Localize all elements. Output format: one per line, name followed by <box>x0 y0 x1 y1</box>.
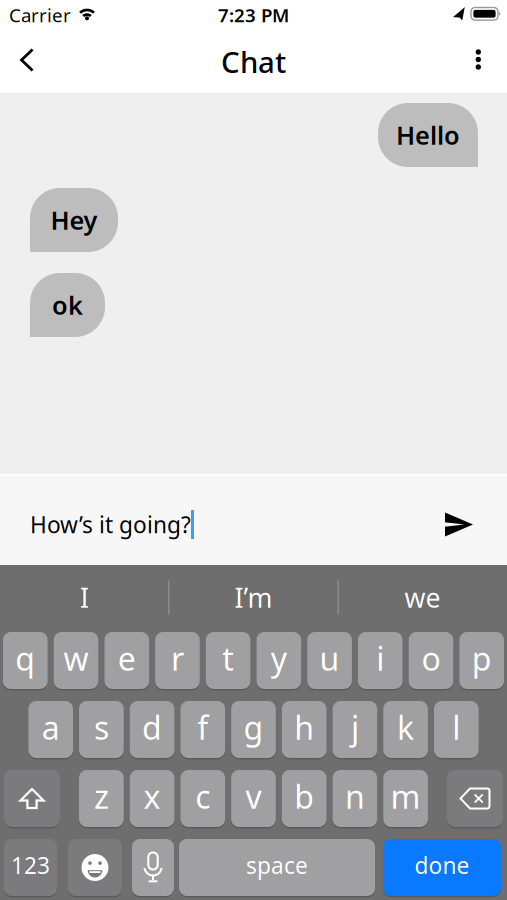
staticText: 123 <box>11 850 50 880</box>
button[interactable]: d <box>130 701 174 758</box>
button[interactable]: c <box>180 770 225 827</box>
staticText: r <box>171 637 184 680</box>
staticText: i <box>376 637 384 680</box>
button[interactable]: z <box>79 770 124 827</box>
button[interactable]: o <box>409 632 453 689</box>
button[interactable]: e <box>104 632 149 689</box>
button[interactable]: More options <box>476 33 507 90</box>
staticText: ok <box>52 288 83 322</box>
staticText: h <box>294 706 314 749</box>
staticText: n <box>345 775 365 818</box>
staticText: How’s it going? <box>30 509 191 539</box>
staticText: m <box>391 775 421 818</box>
button[interactable]: m <box>383 770 428 827</box>
button[interactable]: b <box>282 770 327 827</box>
button[interactable]: done <box>383 839 501 896</box>
staticText: Chat <box>221 42 286 81</box>
staticText: I <box>80 580 89 615</box>
staticText: g <box>243 706 263 749</box>
button[interactable]: t <box>206 632 250 689</box>
button[interactable]: r <box>155 632 200 689</box>
staticText: c <box>195 775 210 818</box>
button[interactable]: j <box>333 701 377 758</box>
button[interactable]: h <box>282 701 327 758</box>
button[interactable]: p <box>459 632 504 689</box>
button[interactable]: 123 <box>4 839 57 896</box>
button[interactable]: x <box>130 770 174 827</box>
button[interactable]: w <box>54 632 98 689</box>
button[interactable]: u <box>307 632 352 689</box>
staticText: y <box>271 637 287 680</box>
staticText: t <box>222 637 234 680</box>
button[interactable]: n <box>333 770 377 827</box>
staticText: u <box>320 637 340 680</box>
staticText: p <box>472 637 492 680</box>
button[interactable]: f <box>180 701 225 758</box>
staticText: f <box>197 706 208 749</box>
staticText: x <box>144 775 161 818</box>
button[interactable]: space <box>179 839 375 896</box>
button[interactable]: Shift <box>4 770 60 827</box>
staticText: 7:23 PM <box>218 3 289 27</box>
staticText: a <box>42 706 60 749</box>
staticText: we <box>404 580 440 615</box>
button[interactable]: y <box>256 632 301 689</box>
button[interactable]: Back <box>0 31 34 91</box>
button[interactable]: Send <box>433 492 507 556</box>
staticText: s <box>94 706 109 749</box>
staticText: o <box>421 637 440 680</box>
staticText: d <box>142 706 162 749</box>
button[interactable]: s <box>79 701 124 758</box>
staticText: Carrier <box>9 3 71 27</box>
staticText: q <box>15 637 35 680</box>
button[interactable]: Delete <box>447 770 503 827</box>
staticText: l <box>452 706 460 749</box>
button[interactable]: k <box>383 701 428 758</box>
staticText: w <box>64 637 89 680</box>
button[interactable]: Dictate <box>132 839 174 896</box>
button[interactable]: g <box>231 701 276 758</box>
button[interactable]: l <box>434 701 479 758</box>
button[interactable]: i <box>358 632 403 689</box>
staticText: v <box>245 775 261 818</box>
staticText: Hello <box>396 118 460 152</box>
button[interactable]: q <box>3 632 48 689</box>
button[interactable]: I’m <box>169 565 338 630</box>
staticText: j <box>351 706 359 749</box>
button[interactable]: a <box>28 701 73 758</box>
staticText: space <box>246 850 308 880</box>
staticText: done <box>414 850 469 880</box>
staticText: k <box>397 706 414 749</box>
button[interactable]: we <box>338 565 507 630</box>
staticText: z <box>94 775 109 818</box>
staticText: I’m <box>234 580 272 615</box>
staticText: b <box>294 775 314 818</box>
button[interactable]: Emoji <box>68 839 122 896</box>
button[interactable]: v <box>231 770 276 827</box>
staticText: Hey <box>50 203 97 237</box>
button[interactable]: I <box>0 565 169 630</box>
staticText: e <box>118 637 136 680</box>
